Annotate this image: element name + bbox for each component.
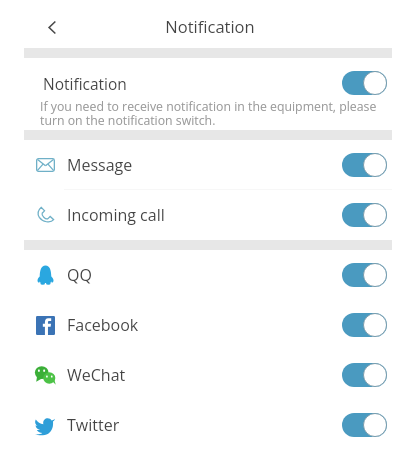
staticText: QQ — [67, 264, 342, 286]
button[interactable]: Notification — [24, 58, 392, 130]
staticText: Notification — [43, 73, 127, 94]
staticText: Message — [67, 154, 342, 176]
staticText: WeChat — [67, 364, 342, 386]
button[interactable]: Message — [24, 140, 392, 190]
button[interactable]: Facebook — [24, 300, 392, 350]
button[interactable]: Toggle switch — [342, 71, 387, 95]
button[interactable]: Toggle switch — [342, 153, 387, 177]
staticText: Twitter — [67, 414, 342, 436]
button[interactable]: Toggle switch — [342, 313, 387, 337]
staticText: Facebook — [67, 314, 342, 336]
button[interactable]: QQ — [24, 250, 392, 300]
button[interactable]: Twitter — [24, 400, 392, 450]
button[interactable]: Toggle switch — [342, 413, 387, 437]
button[interactable]: Toggle switch — [342, 203, 387, 227]
button[interactable]: Toggle switch — [342, 263, 387, 287]
staticText: Notification — [165, 15, 255, 37]
button[interactable]: WeChat — [24, 350, 392, 400]
staticText: If you need to receive notification in t… — [40, 98, 377, 129]
staticText: Incoming call — [67, 204, 342, 226]
button[interactable]: Incoming call — [24, 190, 392, 240]
button[interactable]: Toggle switch — [342, 363, 387, 387]
button[interactable]: Back — [33, 9, 70, 46]
